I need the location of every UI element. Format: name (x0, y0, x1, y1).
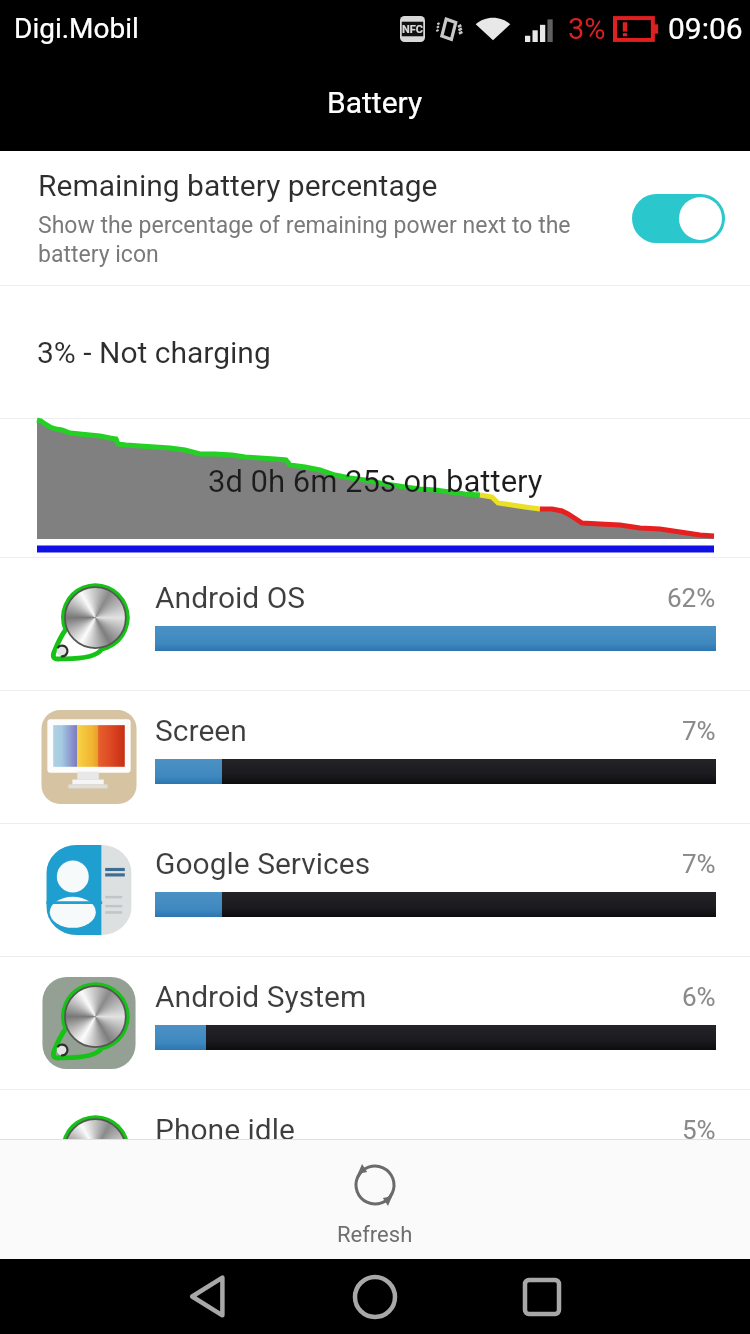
staticText: 3% - Not charging (37, 335, 271, 370)
button[interactable]: Android System (0, 957, 750, 1089)
staticText: 62% (667, 583, 716, 613)
staticText: Refresh (337, 1222, 413, 1248)
button[interactable]: Back (125, 1259, 291, 1334)
staticText: 3% (568, 12, 606, 46)
staticText: 6% (682, 982, 716, 1012)
staticText: Android OS (155, 580, 667, 615)
staticText: 7% (682, 716, 716, 746)
button[interactable]: Home (292, 1259, 458, 1334)
button[interactable]: Screen (0, 691, 750, 823)
staticText: Show the percentage of remaining power n… (38, 212, 576, 268)
button[interactable]: Android OS (0, 558, 750, 690)
staticText: Screen (155, 713, 682, 748)
staticText: Battery (327, 85, 423, 120)
button[interactable]: Phone idle (0, 1090, 750, 1222)
button[interactable]: Recents (459, 1259, 625, 1334)
staticText: Phone idle (155, 1112, 682, 1147)
button[interactable]: Toggle remaining battery percentage (632, 194, 725, 243)
button[interactable]: 3% - Not charging (0, 286, 750, 418)
staticText: 3d 0h 6m 25s on battery (208, 463, 543, 499)
staticText: Digi.Mobil (14, 12, 139, 45)
staticText: 7% (682, 849, 716, 879)
staticText: NFC (402, 23, 423, 36)
staticText: Remaining battery percentage (38, 168, 438, 203)
button[interactable]: Refresh (0, 1140, 750, 1259)
staticText: 5% (682, 1115, 716, 1145)
staticText: Android System (155, 979, 682, 1014)
staticText: Google Services (155, 846, 682, 881)
staticText: 09:06 (668, 11, 743, 46)
button[interactable]: Remaining battery percentage (0, 151, 750, 285)
button[interactable]: Google Services (0, 824, 750, 956)
